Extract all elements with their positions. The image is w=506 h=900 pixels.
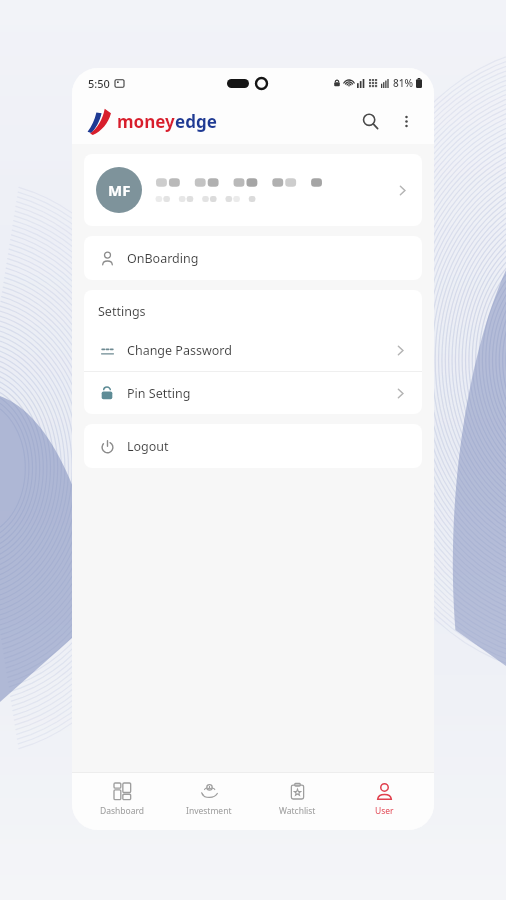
button[interactable]: Dashboard xyxy=(85,778,159,820)
staticText: Change Password xyxy=(127,342,393,359)
staticText: MF xyxy=(108,180,131,200)
staticText: User xyxy=(375,805,394,817)
staticText: Watchlist xyxy=(279,805,316,817)
staticText: Logout xyxy=(127,438,169,455)
button[interactable]: Logout xyxy=(84,424,422,468)
button[interactable]: User xyxy=(347,778,421,820)
button[interactable]: Watchlist xyxy=(260,778,334,820)
button[interactable]: OnBoarding xyxy=(84,236,422,280)
staticText: Dashboard xyxy=(100,805,145,817)
button[interactable]: More options xyxy=(388,103,424,139)
button[interactable]: Search xyxy=(352,103,388,139)
staticText: 81% xyxy=(393,76,413,90)
button[interactable]: Change Password xyxy=(84,329,422,371)
button[interactable]: Pin Setting xyxy=(84,372,422,414)
staticText: Pin Setting xyxy=(127,385,393,402)
staticText: Settings xyxy=(98,303,146,320)
staticText: 5:50 xyxy=(88,76,110,91)
staticText: OnBoarding xyxy=(127,250,199,267)
button[interactable]: MF xyxy=(84,154,422,226)
staticText: Investment xyxy=(186,805,232,817)
staticText: edge xyxy=(175,110,217,133)
staticText: money xyxy=(117,110,175,133)
button[interactable]: Investment xyxy=(172,778,246,820)
